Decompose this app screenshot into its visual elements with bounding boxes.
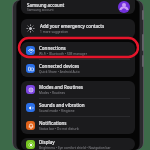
staticText: 1 more suggestion bbox=[40, 30, 69, 34]
other: Sounds and vibration bbox=[26, 103, 35, 112]
staticText: Add your emergency contacts bbox=[40, 23, 105, 29]
staticText: Connections bbox=[39, 45, 66, 51]
button[interactable]: Connected devices bbox=[21, 60, 135, 77]
button[interactable]: Modes and Routines bbox=[21, 81, 135, 98]
staticText: Status bar • Do not disturb bbox=[39, 127, 79, 131]
button[interactable]: Samsung account bbox=[21, 0, 135, 14]
staticText: Connected devices bbox=[39, 63, 80, 69]
other: Connected devices bbox=[26, 64, 35, 73]
other: Modes and Routines bbox=[26, 85, 35, 94]
button[interactable]: Display bbox=[21, 138, 135, 150]
staticText: Sound mode • Ringtone bbox=[39, 109, 75, 113]
staticText: Brightness • Eye comfort shield • Naviga… bbox=[39, 146, 111, 150]
staticText: Modes and Routines bbox=[39, 84, 83, 90]
staticText: Quick Share • Android Auto bbox=[39, 70, 80, 74]
other: Connections bbox=[26, 46, 35, 55]
button[interactable]: Add your emergency contacts bbox=[21, 19, 135, 38]
staticText: Notifications bbox=[39, 120, 67, 126]
staticText: Wi-Fi • Bluetooth • SIM manager bbox=[39, 52, 87, 56]
staticText: Modes • Routines bbox=[39, 91, 66, 95]
staticText: Samsung account bbox=[27, 2, 65, 8]
other: Display bbox=[26, 140, 35, 149]
other: Notifications bbox=[26, 121, 35, 130]
staticText: Display bbox=[39, 139, 55, 145]
staticText: Sounds and vibration bbox=[39, 102, 85, 108]
button[interactable]: Notifications bbox=[21, 117, 135, 134]
button[interactable]: Sounds and vibration bbox=[21, 99, 135, 116]
button[interactable]: Connections bbox=[21, 42, 135, 59]
staticText: Samsung account bbox=[27, 8, 54, 12]
